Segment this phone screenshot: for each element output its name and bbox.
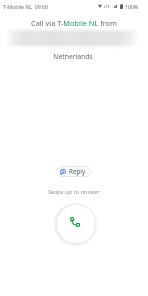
staticText: LTE (104, 4, 110, 9)
staticText: Swipe up to answer (0, 188, 148, 196)
staticText: Netherlands (0, 52, 147, 61)
staticText: T-Mobile NL 09:00 (3, 3, 48, 10)
button[interactable]: Reply (56, 166, 91, 177)
button[interactable]: Answer call (57, 205, 95, 243)
staticText: Reply (69, 167, 86, 176)
staticText: 100% (125, 3, 139, 10)
staticText: Call via T-Mobile NL from (0, 18, 148, 28)
